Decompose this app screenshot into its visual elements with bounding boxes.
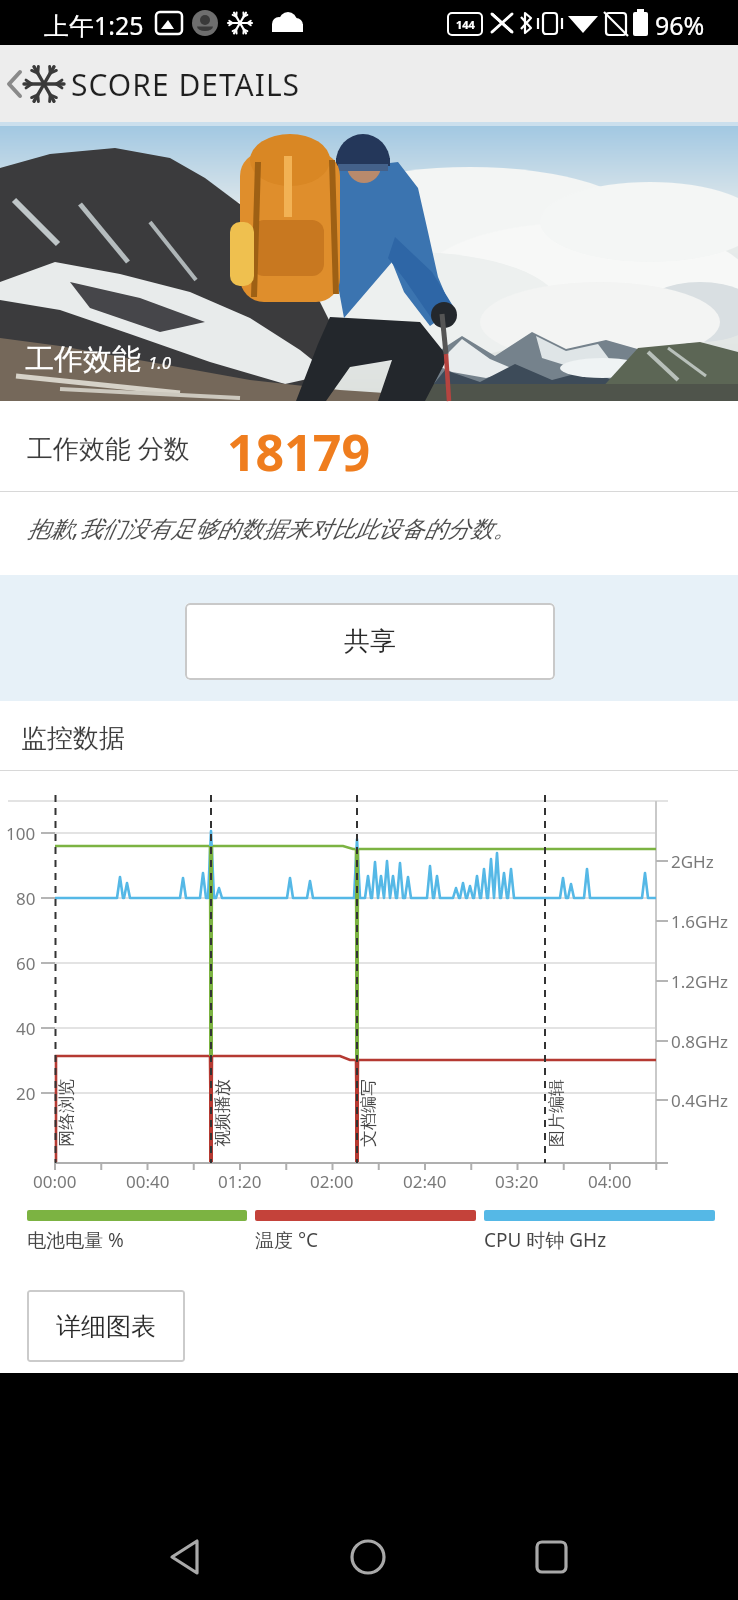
staticText: 03:20 — [495, 1170, 539, 1192]
staticText: SCORE DETAILS — [71, 64, 301, 105]
staticText: 网络浏览 — [56, 1079, 77, 1147]
staticText: 1.0 — [148, 351, 172, 374]
staticText: 共享 — [344, 625, 396, 658]
staticText: 工作效能 — [25, 341, 141, 378]
staticText: 00:00 — [33, 1170, 77, 1192]
staticText: 视频播放 — [212, 1079, 233, 1147]
button[interactable]: 共享 — [185, 603, 555, 680]
staticText: 电池电量 % — [27, 1227, 124, 1253]
staticText: 1.6GHz — [671, 910, 728, 932]
staticText: 100 — [6, 822, 36, 844]
button[interactable] — [521, 1527, 581, 1587]
staticText: 02:40 — [403, 1170, 447, 1192]
staticText: 图片编辑 — [546, 1079, 567, 1147]
staticText: 02:00 — [310, 1170, 354, 1192]
staticText: 0.8GHz — [671, 1030, 728, 1052]
button[interactable]: 详细图表 — [27, 1290, 185, 1362]
staticText: 80 — [16, 887, 36, 909]
staticText: 上午1:25 — [44, 8, 144, 42]
staticText: 0.4GHz — [671, 1089, 728, 1111]
staticText: 2GHz — [671, 850, 714, 872]
button[interactable]: SCORE DETAILS — [0, 45, 738, 122]
staticText: 18179 — [227, 418, 370, 486]
staticText: 监控数据 — [21, 722, 125, 755]
staticText: 01:20 — [218, 1170, 262, 1192]
staticText: 抱歉,我们没有足够的数据来对比此设备的分数。 — [27, 512, 516, 543]
staticText: CPU 时钟 GHz — [484, 1227, 607, 1253]
staticText: 详细图表 — [56, 1311, 156, 1342]
staticText: 60 — [16, 952, 36, 974]
staticText: 20 — [16, 1082, 36, 1104]
staticText: 1.2GHz — [671, 970, 728, 992]
button[interactable] — [338, 1527, 398, 1587]
staticText: 96% — [655, 8, 705, 42]
staticText: 04:00 — [588, 1170, 632, 1192]
staticText: 144 — [456, 17, 475, 32]
staticText: 40 — [16, 1017, 36, 1039]
button[interactable] — [155, 1527, 215, 1587]
staticText: 00:40 — [126, 1170, 170, 1192]
staticText: 文档编写 — [358, 1079, 379, 1147]
staticText: 温度 °C — [255, 1227, 319, 1253]
staticText: 工作效能 分数 — [27, 430, 190, 466]
